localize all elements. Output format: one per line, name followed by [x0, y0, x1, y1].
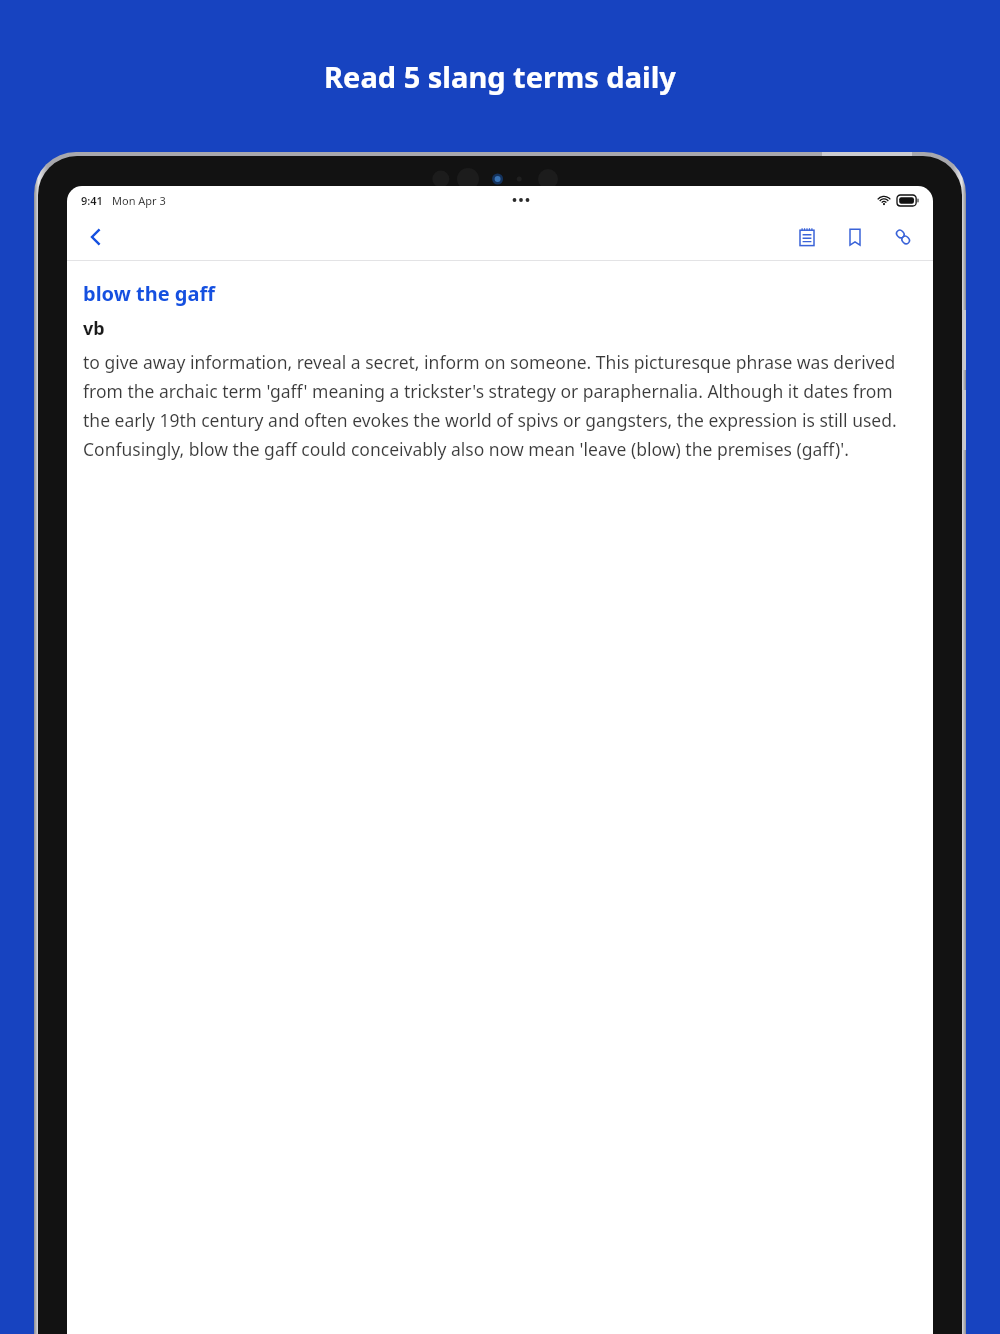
staticText: to give away information, reveal a secre… — [83, 350, 917, 461]
button[interactable]: Copy link — [884, 218, 922, 256]
staticText: Read 5 slang terms daily — [324, 57, 676, 96]
staticText: 9:41 — [81, 193, 103, 208]
button[interactable]: Back — [78, 219, 114, 255]
staticText: blow the gaff — [83, 280, 215, 307]
staticText: vb — [83, 316, 105, 341]
button[interactable]: Notes — [788, 218, 826, 256]
button[interactable]: Bookmark — [836, 218, 874, 256]
staticText: Mon Apr 3 — [112, 193, 166, 208]
